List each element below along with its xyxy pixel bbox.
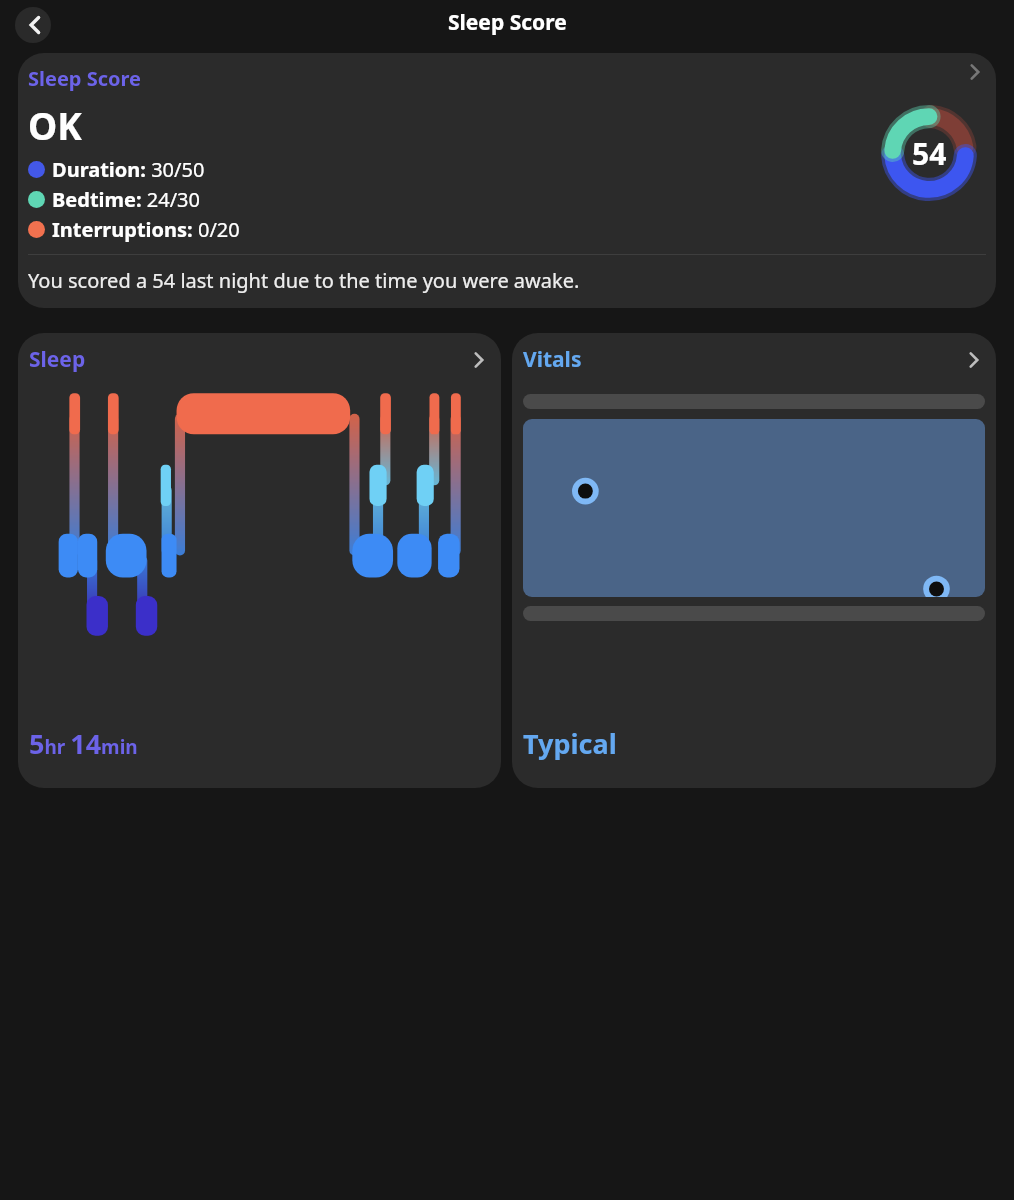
staticText: Bedtime: 24/30 [52,186,200,213]
staticText: You scored a 54 last night due to the ti… [28,267,580,294]
staticText: Typical [523,725,617,762]
button[interactable]: Vitals [512,333,996,788]
staticText: Sleep Score [448,8,567,37]
staticText: Vitals [523,345,963,374]
button[interactable]: Sleep Score [18,53,996,308]
button[interactable]: Sleep [18,333,501,788]
staticText: OK [28,100,82,150]
staticText: Sleep Score [28,65,142,92]
button[interactable]: Back [15,7,51,43]
staticText: Interruptions: 0/20 [52,216,240,243]
staticText: 5hr 14min [29,725,138,762]
button[interactable]: Open sleep score details [964,61,986,83]
staticText: Sleep [29,345,468,374]
staticText: 54 [912,133,947,174]
staticText: Duration: 30/50 [52,156,205,183]
